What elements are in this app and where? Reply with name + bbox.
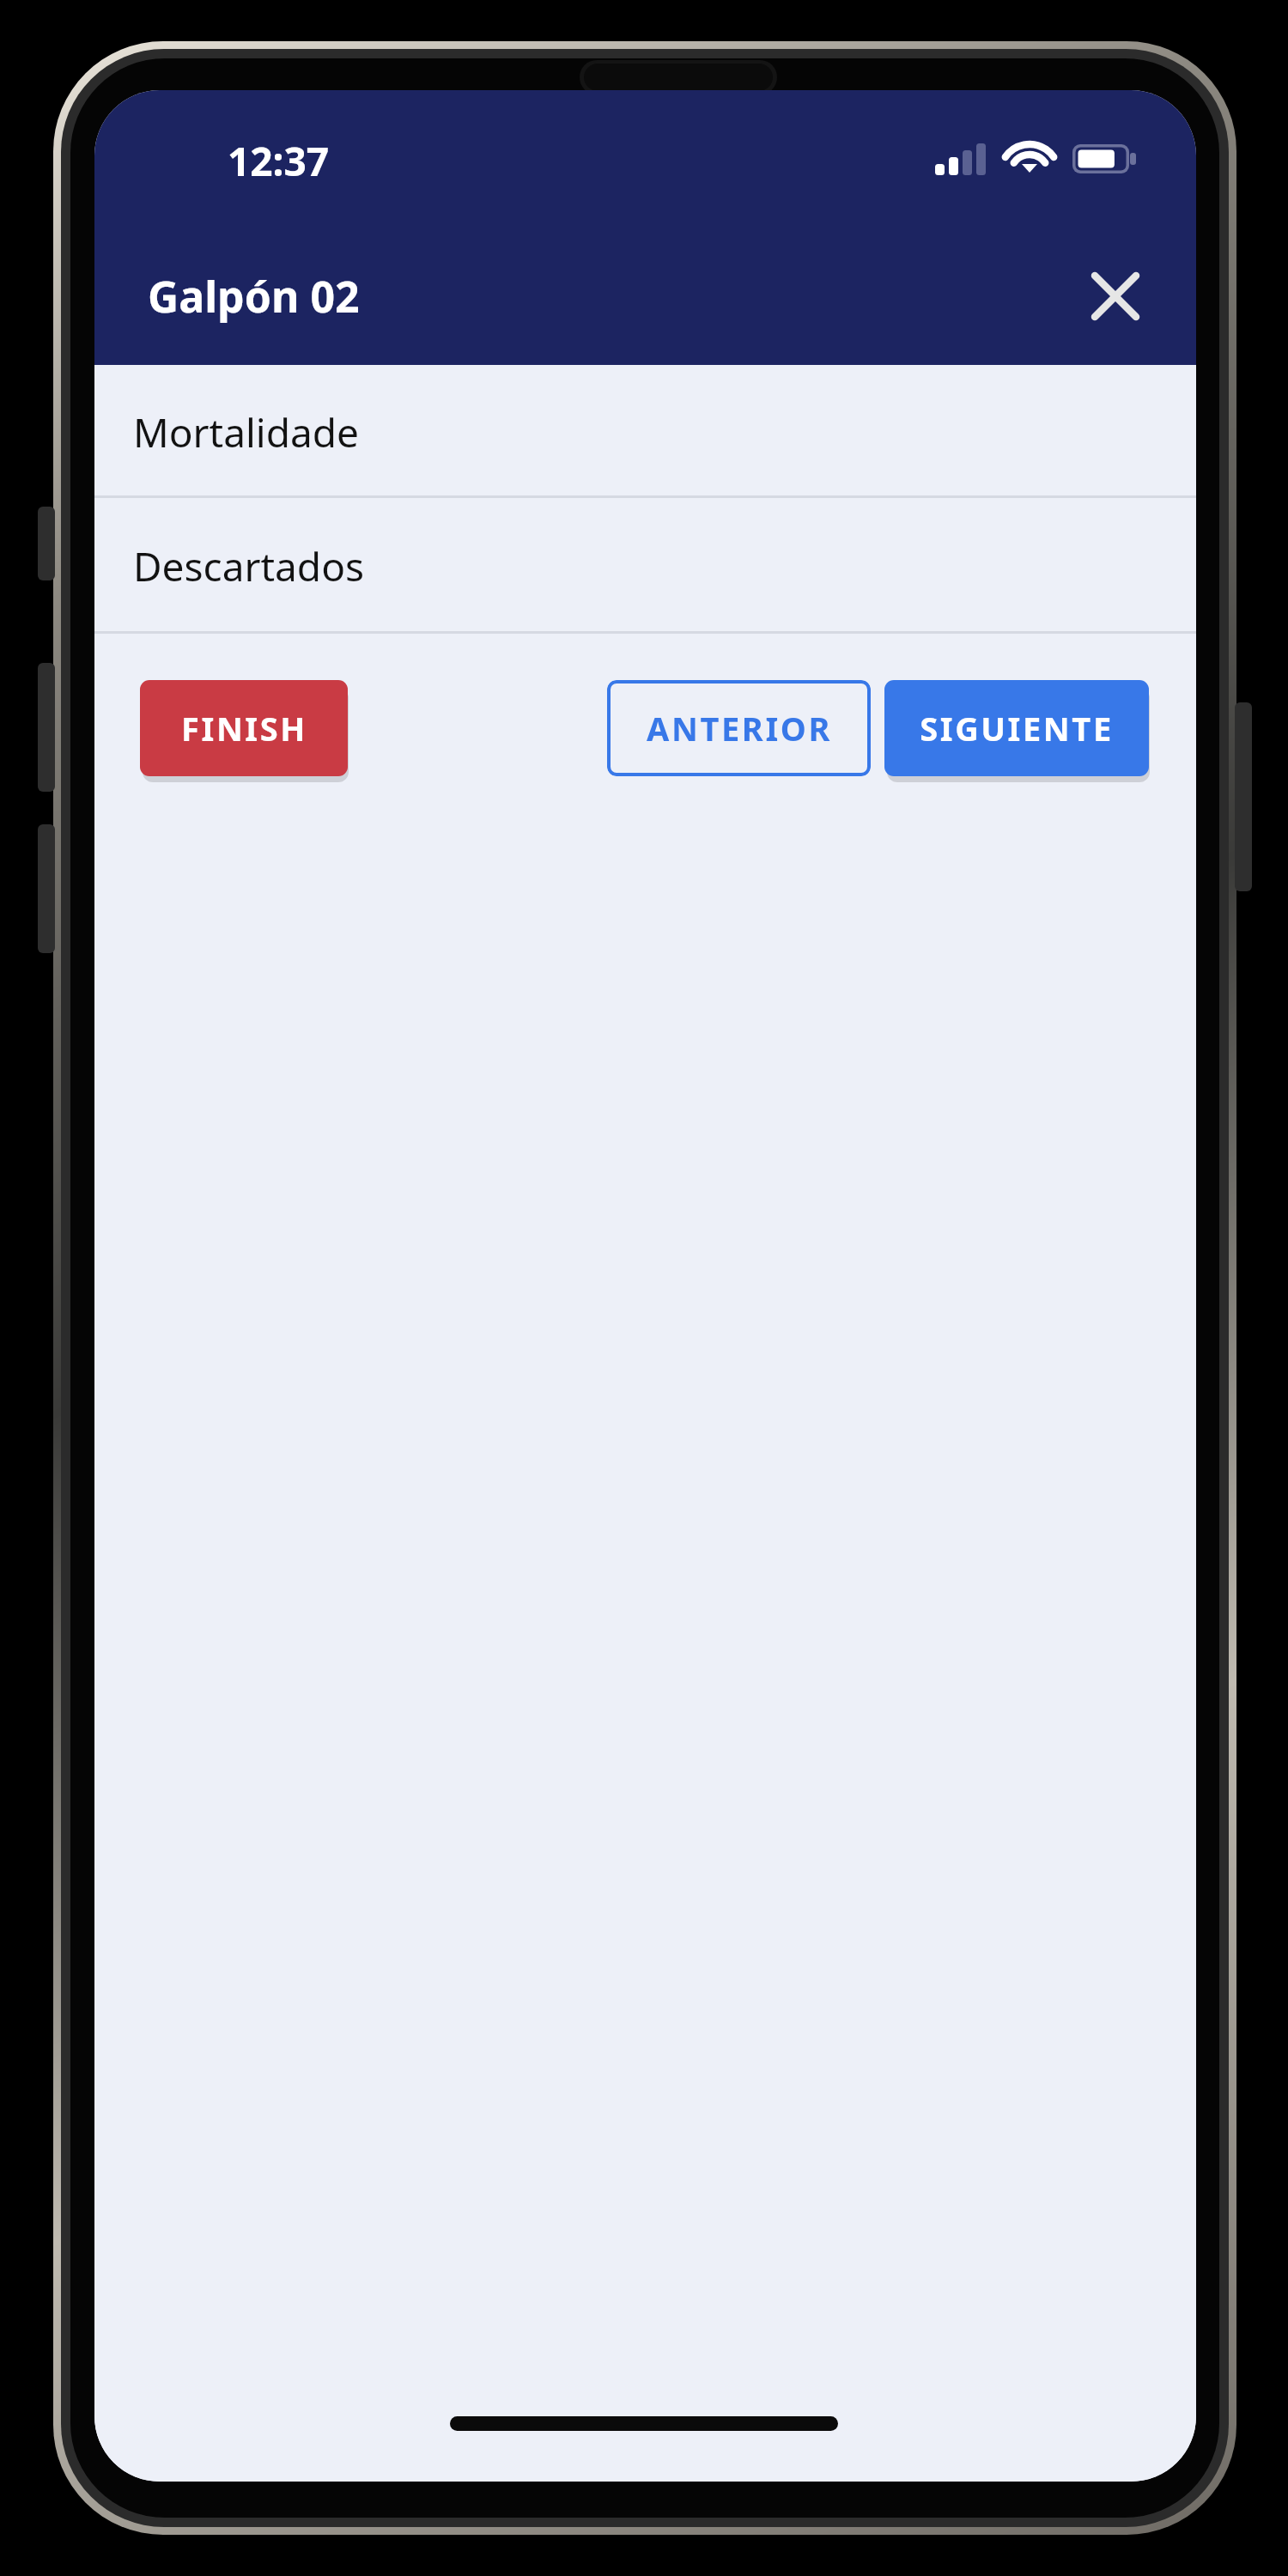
staticText: FINISH bbox=[181, 706, 307, 750]
staticText: Galpón 02 bbox=[148, 267, 360, 325]
button[interactable]: Mortalidade bbox=[94, 365, 1196, 495]
button[interactable]: SIGUIENTE bbox=[884, 680, 1149, 776]
button[interactable]: Close bbox=[1074, 255, 1157, 337]
staticText: ANTERIOR bbox=[647, 706, 832, 750]
staticText: Descartados bbox=[133, 539, 365, 593]
staticText: SIGUIENTE bbox=[920, 706, 1114, 750]
button[interactable]: ANTERIOR bbox=[607, 680, 871, 776]
button[interactable]: Descartados bbox=[94, 498, 1196, 631]
staticText: Mortalidade bbox=[133, 405, 360, 459]
button[interactable]: FINISH bbox=[140, 680, 348, 776]
staticText: 12:37 bbox=[228, 134, 330, 188]
